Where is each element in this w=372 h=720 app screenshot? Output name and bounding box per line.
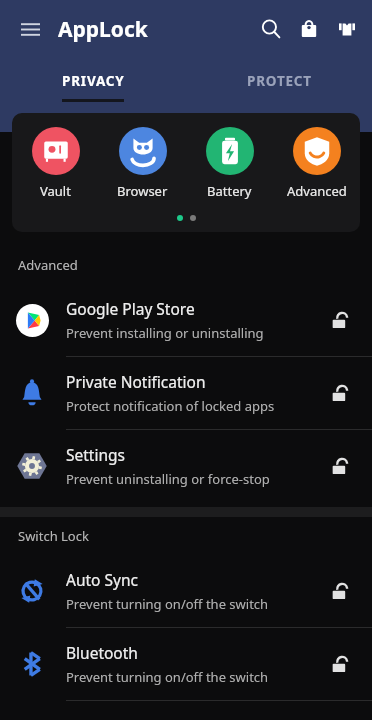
staticText: Auto Sync [66, 569, 138, 590]
button[interactable]: Auto Sync [0, 555, 372, 628]
staticText: AppLock [58, 15, 148, 44]
button[interactable]: Themes [328, 10, 366, 48]
staticText: Settings [66, 444, 125, 465]
staticText: Bluetooth [66, 642, 138, 663]
button[interactable]: Toggle lock for Bluetooth [322, 647, 356, 681]
button[interactable]: PROTECT [186, 58, 372, 106]
button[interactable]: Bluetooth [0, 628, 372, 701]
staticText: Protect notification of locked apps [66, 397, 275, 415]
staticText: PRIVACY [62, 72, 125, 90]
button[interactable]: Toggle lock for Auto Sync [322, 574, 356, 608]
staticText: Prevent turning on/off the switch [66, 595, 269, 613]
staticText: PROTECT [247, 72, 312, 90]
staticText: Private Notification [66, 371, 206, 392]
button[interactable]: Battery [186, 127, 273, 200]
staticText: Advanced [287, 182, 347, 200]
staticText: Vault [40, 182, 71, 200]
button[interactable]: Store [290, 10, 328, 48]
staticText: Advanced [18, 256, 78, 274]
button[interactable]: Advanced [273, 127, 360, 200]
staticText: Prevent installing or uninstalling [66, 324, 264, 342]
staticText: Switch Lock [18, 527, 89, 545]
staticText: Prevent uninstalling or force-stop [66, 470, 270, 488]
button[interactable]: Toggle lock for Private Notification [322, 376, 356, 410]
button[interactable]: PRIVACY [0, 58, 186, 106]
staticText: Battery [207, 182, 252, 200]
button[interactable]: Private Notification [0, 357, 372, 430]
button[interactable]: Settings [0, 430, 372, 502]
button[interactable]: Vault [12, 127, 99, 200]
button[interactable]: Browser [99, 127, 186, 200]
staticText: Google Play Store [66, 298, 195, 319]
button[interactable]: Open navigation menu [10, 9, 50, 49]
staticText: Browser [117, 182, 168, 200]
button[interactable]: Toggle lock for Settings [322, 449, 356, 483]
button[interactable]: Google Play Store [0, 284, 372, 357]
button[interactable]: Search [252, 10, 290, 48]
staticText: Prevent turning on/off the switch [66, 668, 269, 686]
button[interactable]: Toggle lock for Google Play Store [322, 303, 356, 337]
